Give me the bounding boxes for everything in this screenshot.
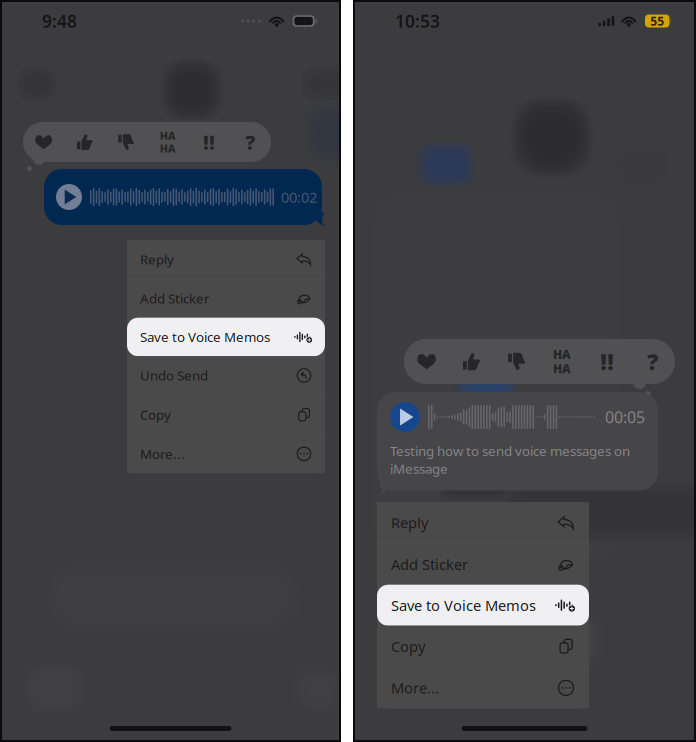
staticText: Undo Send bbox=[140, 367, 208, 384]
staticText: Testing how to send voice messages on iM… bbox=[390, 442, 630, 477]
staticText: Copy bbox=[140, 406, 171, 423]
staticText: 00:02 bbox=[281, 187, 317, 207]
staticText: Copy bbox=[391, 636, 425, 656]
staticText: More... bbox=[140, 445, 185, 463]
button[interactable]: Save to Voice Memos bbox=[127, 318, 325, 356]
staticText: More... bbox=[391, 678, 439, 698]
staticText: Save to Voice Memos bbox=[140, 328, 270, 346]
staticText: HA bbox=[553, 361, 571, 377]
staticText: Save to Voice Memos bbox=[391, 595, 536, 615]
button[interactable]: Save to Voice Memos bbox=[377, 585, 589, 626]
staticText: Reply bbox=[391, 513, 428, 532]
staticText: ? bbox=[647, 346, 658, 376]
button[interactable]: Add Sticker bbox=[377, 544, 589, 585]
button[interactable]: Copy bbox=[377, 626, 589, 667]
staticText: !! bbox=[203, 129, 215, 155]
staticText: Add Sticker bbox=[391, 554, 468, 574]
staticText: 9:48 bbox=[42, 9, 77, 32]
staticText: HA bbox=[553, 346, 571, 362]
button[interactable]: More... bbox=[377, 667, 589, 708]
staticText: ? bbox=[245, 129, 255, 155]
button[interactable]: Undo Send bbox=[127, 356, 325, 395]
staticText: 00:05 bbox=[605, 406, 645, 428]
staticText: 55 bbox=[650, 13, 664, 29]
button[interactable]: Add Sticker bbox=[127, 279, 325, 318]
staticText: Add Sticker bbox=[140, 290, 210, 307]
staticText: Reply bbox=[140, 250, 174, 268]
staticText: 10:53 bbox=[395, 9, 440, 32]
staticText: !! bbox=[600, 346, 614, 376]
button[interactable]: More... bbox=[127, 435, 325, 473]
button[interactable]: Reply bbox=[127, 240, 325, 278]
staticText: HA bbox=[160, 128, 176, 143]
button[interactable]: Reply bbox=[377, 502, 589, 543]
button[interactable]: Copy bbox=[127, 395, 325, 434]
staticText: HA bbox=[160, 141, 176, 155]
